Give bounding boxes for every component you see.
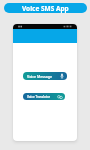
button[interactable]: Voice Message	[23, 72, 67, 80]
button[interactable]: Voice Translator	[23, 93, 65, 100]
other: Translate	[57, 94, 63, 100]
button[interactable]: Voice SMS App	[4, 3, 87, 13]
staticText: Voice SMS App	[22, 4, 69, 13]
staticText: Voice Translator	[27, 95, 51, 99]
staticText: Voice Message	[27, 74, 53, 79]
